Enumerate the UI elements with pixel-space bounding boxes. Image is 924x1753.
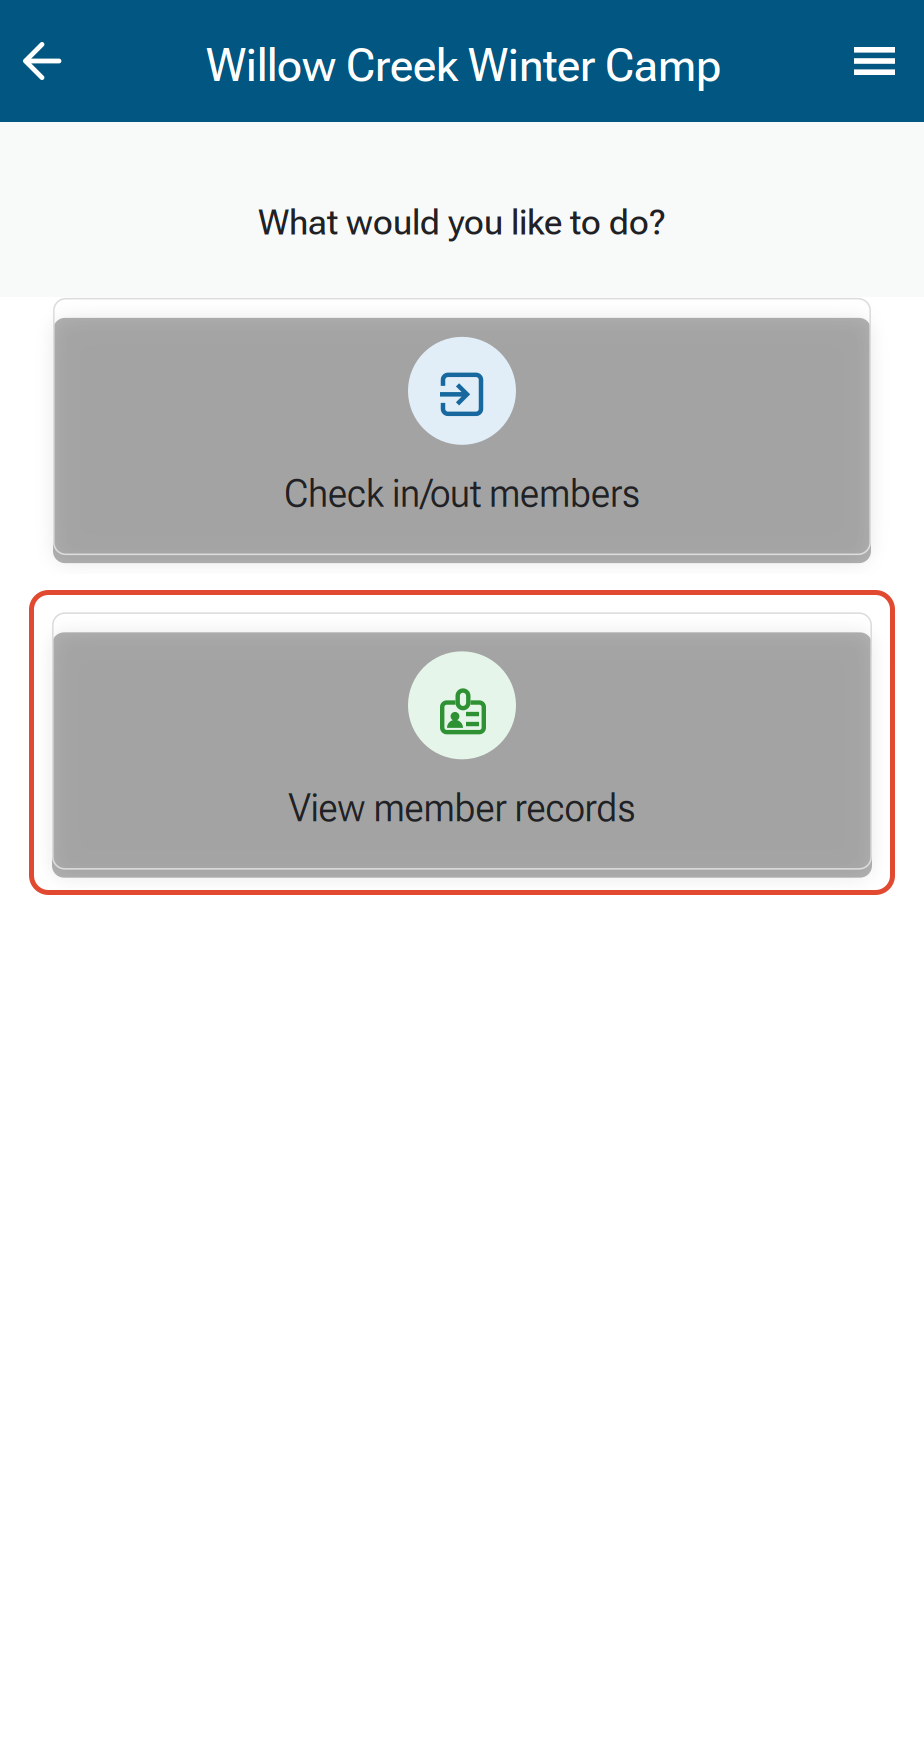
button[interactable]: Back [0,0,84,122]
staticText: Willow Creek Winter Camp [206,38,721,92]
staticText: View member records [288,785,635,831]
button[interactable]: Check in/out members [0,297,924,553]
staticText: What would you like to do? [258,201,666,243]
staticText: Check in/out members [284,471,640,516]
button[interactable]: Menu [841,0,924,122]
button[interactable]: View member records [0,590,924,895]
